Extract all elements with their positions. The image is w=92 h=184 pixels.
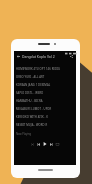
staticText: PASBIT MUJA - WORD R	[16, 123, 48, 127]
button[interactable]: MEGABUFI LUMOT - UPOR	[14, 105, 76, 113]
button[interactable]: SAPUI DISTL - WERD	[14, 89, 76, 97]
button[interactable]: KEREOKO WITH ATIK - K	[14, 113, 76, 121]
staticText: SAPUI DISTL - WERD	[16, 91, 44, 95]
button[interactable]: PASBIT MUJA - WORD R	[14, 121, 76, 129]
staticText: HAMBATHU - BICRA	[16, 99, 43, 103]
button[interactable]: Share	[67, 52, 75, 60]
button[interactable]: Next	[48, 141, 54, 147]
staticText: Now Playing	[16, 132, 32, 136]
button[interactable]: OREO YURI - ALL ART	[14, 73, 76, 81]
staticText: Dangdut Koplo Vol 2	[22, 54, 55, 59]
button[interactable]: HAMBATHU - BICRA	[14, 97, 76, 105]
button[interactable]: HOMEWORK 4TU OPT 146 REDIG	[14, 65, 76, 73]
staticText: MEGABUFI LUMOT - UPOR	[16, 107, 52, 111]
button[interactable]: Back	[14, 52, 22, 60]
button[interactable]: Play	[41, 140, 48, 147]
button[interactable]: Repeat	[54, 141, 60, 147]
staticText: KEREOKO WITH ATIK - K	[16, 115, 49, 119]
button[interactable]: Previous	[35, 141, 41, 147]
staticText: HOMEWORK 4TU OPT 146 REDIG	[16, 67, 61, 71]
button[interactable]: Shuffle	[29, 141, 35, 147]
staticText: KOREAN JANG 1 DESIMAL	[16, 83, 51, 87]
button[interactable]: KOREAN JANG 1 DESIMAL	[14, 81, 76, 89]
staticText: OREO YURI - ALL ART	[16, 75, 45, 79]
